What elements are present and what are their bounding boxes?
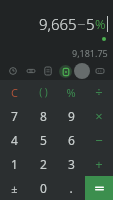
staticText: + [95, 155, 103, 173]
staticText: 3 [68, 156, 75, 172]
staticText: % [66, 85, 76, 100]
staticText: 0 [40, 180, 47, 196]
button[interactable]: 4 [0, 128, 29, 152]
button[interactable]: C [0, 80, 29, 104]
staticText: 5 [40, 132, 47, 148]
button[interactable]: 6 [57, 128, 85, 152]
button[interactable]: ÷ [85, 80, 113, 104]
button[interactable]: 7 [0, 104, 29, 128]
staticText: 2 [40, 156, 47, 172]
button[interactable]: × [85, 104, 113, 128]
button[interactable]: Memory [23, 63, 39, 79]
staticText: % [95, 15, 106, 33]
staticText: ÷ [95, 83, 103, 101]
staticText: . [69, 180, 73, 196]
staticText: ( ) [39, 85, 48, 99]
button[interactable]: 2 [29, 152, 57, 176]
staticText: 8 [40, 108, 47, 124]
button[interactable]: Keypad [92, 63, 108, 79]
staticText: 6 [68, 132, 75, 148]
button[interactable]: ( ) [29, 80, 57, 104]
staticText: ± [11, 181, 18, 196]
staticText: 7 [11, 108, 18, 124]
button[interactable]: 1 [0, 152, 29, 176]
button[interactable]: − [85, 128, 113, 152]
staticText: − [77, 14, 86, 34]
button[interactable]: 9 [57, 104, 85, 128]
button[interactable]: 0 [29, 176, 57, 200]
button[interactable]: Notes [40, 63, 56, 79]
staticText: 9,181.75 [72, 47, 108, 59]
button[interactable]: 8 [29, 104, 57, 128]
button[interactable]: ± [0, 176, 29, 200]
staticText: 4 [11, 132, 18, 148]
staticText: 9 [68, 108, 75, 124]
button[interactable] [85, 176, 113, 200]
staticText: 9,665 [39, 14, 77, 34]
staticText: 1 [11, 156, 18, 172]
staticText: C [11, 85, 18, 100]
button[interactable]: + [85, 152, 113, 176]
staticText: 5 [86, 14, 95, 34]
button[interactable]: . [57, 176, 85, 200]
button[interactable]: Calculator [57, 63, 73, 79]
button[interactable]: History [5, 63, 21, 79]
button[interactable]: 3 [57, 152, 85, 176]
button[interactable]: Converter [74, 63, 90, 79]
staticText: × [95, 107, 103, 125]
staticText: − [95, 131, 103, 149]
button[interactable]: 5 [29, 128, 57, 152]
button[interactable]: % [57, 80, 85, 104]
